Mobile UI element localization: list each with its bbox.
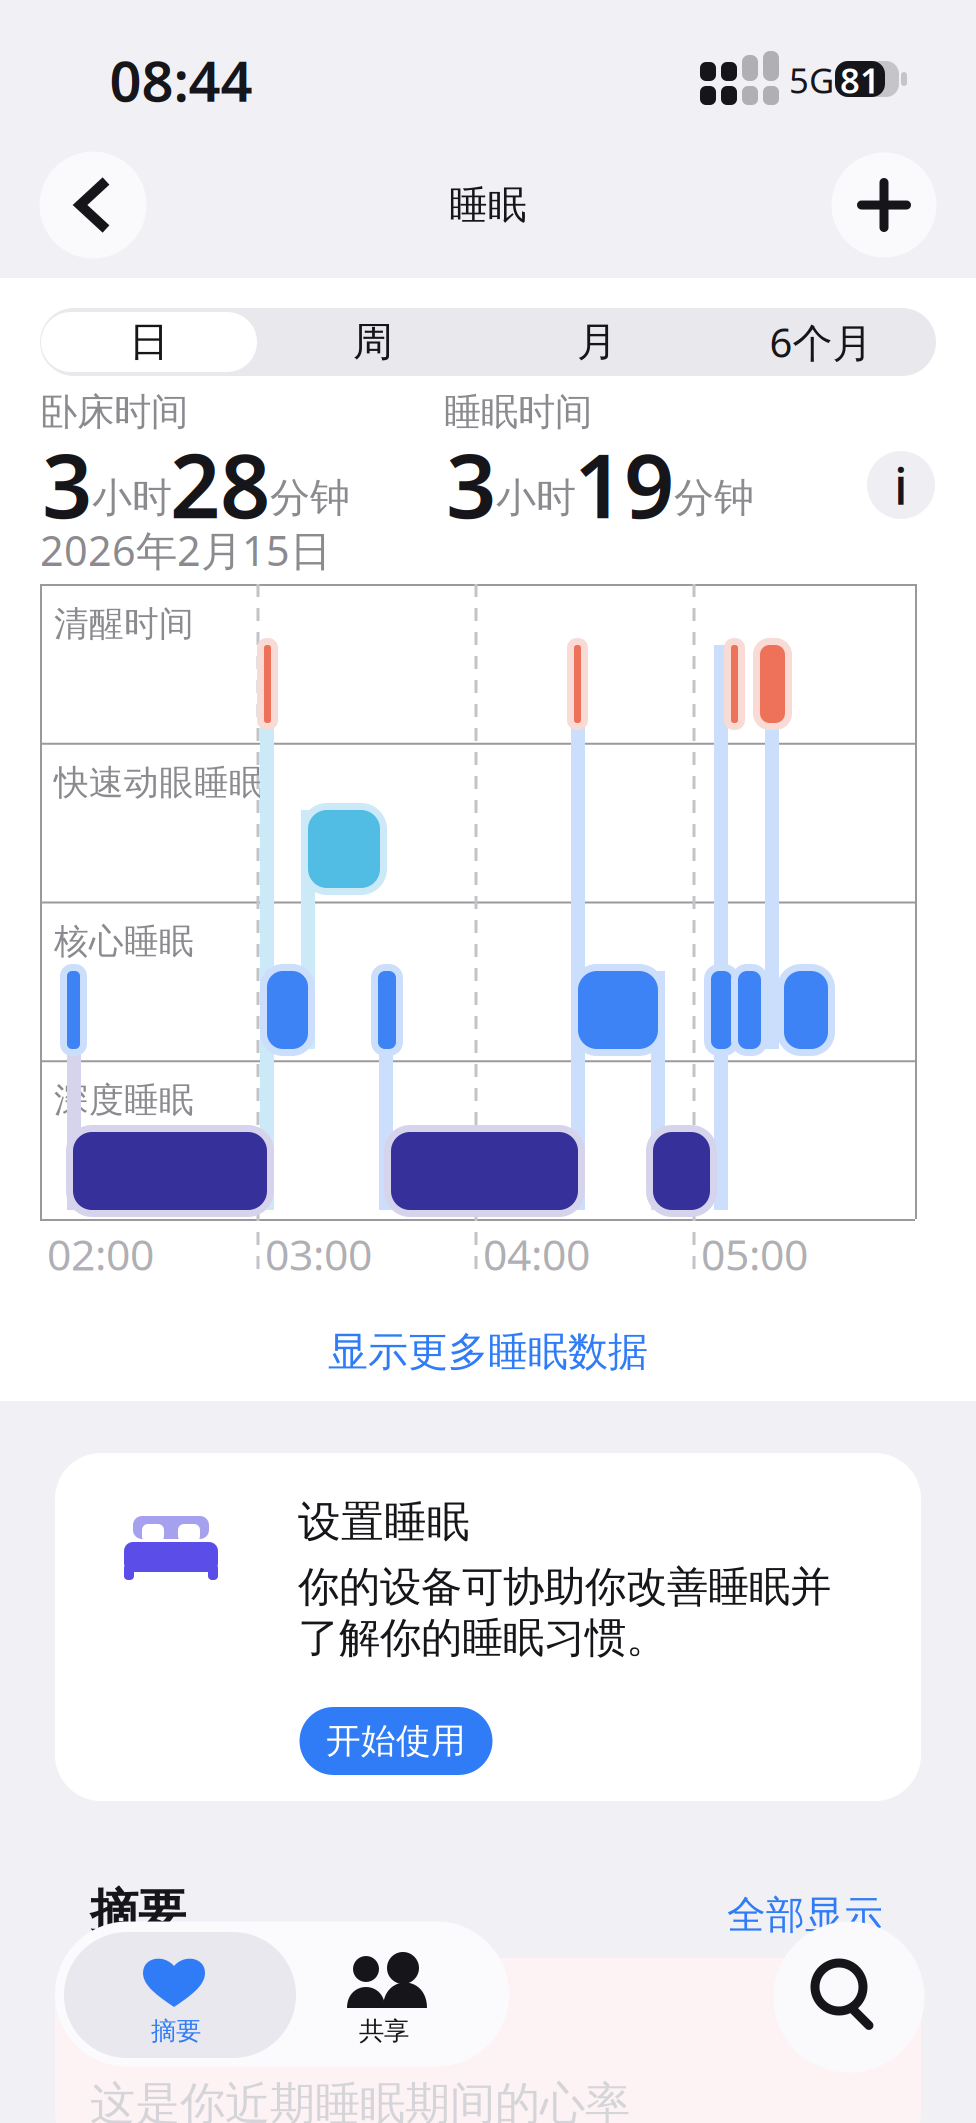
staticText: 3 xyxy=(446,426,496,542)
staticText: 02:00 xyxy=(47,1226,154,1282)
staticText: 6个月 xyxy=(769,315,872,368)
staticText: 5G xyxy=(789,57,834,103)
staticText: 小时 xyxy=(92,473,172,522)
staticText: 睡眠 xyxy=(449,181,527,229)
staticText: 周 xyxy=(353,317,393,366)
staticText: 你的设备可协助你改善睡眠并 xyxy=(298,1562,831,1612)
button[interactable]: 周 xyxy=(261,308,485,376)
staticText: 显示更多睡眠数据 xyxy=(328,1327,648,1376)
staticText: 日 xyxy=(129,317,169,366)
staticText: 28 xyxy=(170,426,270,542)
staticText: 睡眠时间 xyxy=(444,389,592,435)
button[interactable]: 添加 xyxy=(831,152,936,257)
button[interactable]: 摘要 xyxy=(0,0,976,2123)
staticText: 设置睡眠 xyxy=(298,1496,470,1548)
staticText: 这是你近期睡眠期间的心率 xyxy=(90,2076,630,2123)
button[interactable]: 返回 xyxy=(39,151,146,258)
staticText: 19 xyxy=(574,426,674,542)
staticText: 03:00 xyxy=(265,1226,372,1282)
staticText: 清醒时间 xyxy=(54,603,194,645)
staticText: 核心睡眠 xyxy=(54,920,194,963)
staticText: 开始使用 xyxy=(326,1720,466,1762)
staticText: 08:44 xyxy=(109,43,252,117)
staticText: i xyxy=(894,451,908,519)
button[interactable]: 6个月 xyxy=(709,308,933,376)
staticText: 快速动眼睡眠 xyxy=(54,761,264,804)
staticText: 摘要 xyxy=(151,2015,201,2046)
staticText: 了解你的睡眠习惯。 xyxy=(298,1613,667,1663)
button[interactable]: 全部显示 xyxy=(695,1884,915,1946)
staticText: 全部显示 xyxy=(727,1891,883,1939)
staticText: 05:00 xyxy=(701,1226,808,1282)
button[interactable]: 共享 xyxy=(0,0,976,2123)
staticText: 共享 xyxy=(359,2015,409,2046)
staticText: 2026年2月15日 xyxy=(40,523,331,577)
button[interactable]: 月 xyxy=(485,308,709,376)
button[interactable]: 信息 xyxy=(867,451,935,519)
staticText: 3 xyxy=(42,426,92,542)
staticText: 深度睡眠 xyxy=(54,1079,194,1122)
staticText: 04:00 xyxy=(483,1226,590,1282)
button[interactable]: 搜索 xyxy=(773,1921,924,2072)
staticText: 摘要 xyxy=(90,1882,186,1941)
staticText: 分钟 xyxy=(674,473,754,522)
staticText: 月 xyxy=(577,317,617,366)
button[interactable]: 显示更多睡眠数据 xyxy=(188,1304,788,1400)
staticText: 81 xyxy=(840,57,880,103)
button[interactable]: 设置睡眠 xyxy=(0,0,976,2123)
staticText: 小时 xyxy=(496,473,576,522)
staticText: 分钟 xyxy=(270,473,350,522)
button[interactable]: 日 xyxy=(37,308,261,376)
staticText: 卧床时间 xyxy=(40,389,188,435)
